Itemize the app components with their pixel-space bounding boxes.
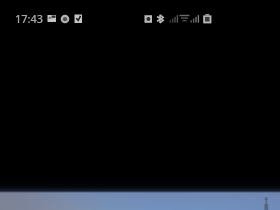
staticText: 17:43 bbox=[15, 11, 44, 26]
button[interactable]: Camera viewfinder, tap to focus bbox=[0, 0, 280, 210]
